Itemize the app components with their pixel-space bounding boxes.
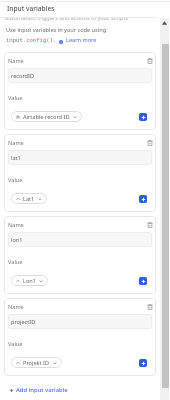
button[interactable]: Lat1	[11, 193, 47, 204]
staticText: automation triggers and actions in your …	[5, 14, 129, 22]
button[interactable]: Add value	[139, 277, 147, 285]
staticText: Name	[8, 303, 24, 311]
staticText: Name	[8, 221, 24, 229]
staticText: Name	[8, 57, 24, 65]
staticText: Value	[8, 340, 23, 348]
button[interactable]: Add value	[139, 195, 147, 203]
staticText: lat1	[11, 154, 21, 162]
button[interactable]: Delete variable	[144, 219, 155, 230]
staticText: Value	[8, 258, 23, 266]
staticText: Input variables	[7, 4, 55, 13]
button[interactable]: Delete variable	[144, 55, 155, 66]
staticText: Name	[8, 139, 24, 147]
button[interactable]: Airtable record ID	[11, 111, 82, 122]
staticText: Airtable record ID	[23, 113, 70, 121]
button[interactable]: projectID	[8, 314, 152, 329]
button[interactable]: Learn more	[59, 36, 97, 44]
button[interactable]: recordID	[8, 68, 152, 83]
staticText: Value	[8, 94, 23, 102]
staticText: Lon1	[23, 277, 36, 285]
button[interactable]: Add input variable	[10, 386, 68, 394]
button[interactable]: lon1	[8, 232, 152, 247]
staticText: recordID	[11, 72, 35, 80]
button[interactable]: Lon1	[11, 275, 48, 286]
button[interactable]: Projekt ID	[11, 357, 62, 368]
button[interactable]: Add value	[139, 359, 147, 367]
staticText: Add input variable	[16, 386, 68, 394]
staticText: Learn more	[66, 36, 97, 44]
staticText: Use input variables in your code using	[6, 26, 107, 34]
button[interactable]: Add value	[139, 113, 147, 121]
button[interactable]: Delete variable	[144, 301, 155, 312]
button[interactable]: Delete variable	[144, 137, 155, 148]
staticText: lon1	[11, 236, 23, 244]
staticText: Value	[8, 176, 23, 184]
staticText: input.config().	[6, 36, 57, 44]
staticText: Projekt ID	[23, 359, 50, 367]
staticText: Lat1	[23, 195, 35, 203]
staticText: projectID	[11, 318, 36, 326]
button[interactable]: lat1	[8, 150, 152, 165]
